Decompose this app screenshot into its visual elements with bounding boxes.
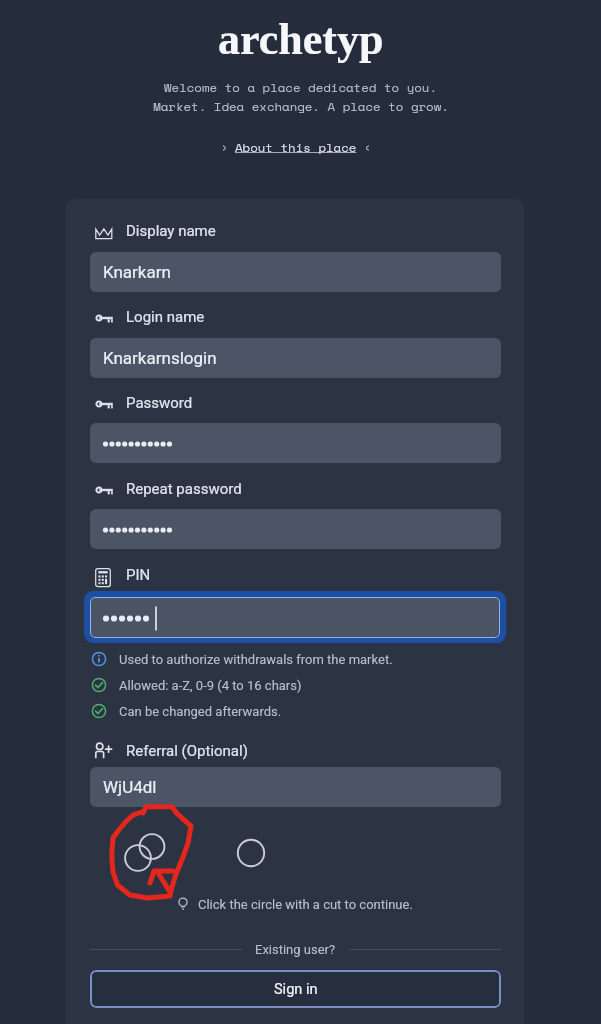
staticText: ‹: [364, 139, 371, 155]
staticText: Password: [126, 394, 193, 412]
staticText: Login name: [126, 308, 205, 326]
staticText: Knarkarn: [103, 262, 171, 282]
staticText: Referral (Optional): [126, 742, 248, 760]
staticText: Market. Idea exchange. A place to grow.: [153, 97, 449, 115]
staticText: Used to authorize withdrawals from the m…: [119, 652, 393, 667]
button[interactable]: Knarkarn: [90, 252, 501, 292]
staticText: archetyp: [218, 15, 384, 64]
staticText: Allowed: a-Z, 0-9 (4 to 16 chars): [119, 678, 302, 693]
button[interactable]: WjU4dl: [90, 767, 501, 807]
staticText: ›: [221, 139, 228, 155]
button[interactable]: [90, 509, 501, 549]
button[interactable]: Sign in: [90, 970, 501, 1008]
staticText: Sign in: [274, 981, 318, 998]
button[interactable]: Plain circle: [236, 848, 266, 878]
button[interactable]: Knarkarnslogin: [90, 338, 501, 378]
button[interactable]: Circle with a cut: [118, 835, 162, 879]
staticText: Welcome to a place dedicated to you.: [164, 78, 437, 96]
staticText: About this place: [235, 138, 357, 156]
button[interactable]: [90, 423, 501, 463]
button[interactable]: ›: [215, 135, 377, 159]
staticText: Display name: [126, 222, 216, 240]
staticText: WjU4dl: [103, 777, 157, 797]
button[interactable]: [84, 591, 506, 643]
staticText: Existing user?: [255, 942, 336, 957]
staticText: Click the circle with a cut to continue.: [198, 897, 413, 912]
staticText: Knarkarnslogin: [103, 348, 217, 368]
staticText: PIN: [126, 566, 151, 584]
staticText: Can be changed afterwards.: [119, 704, 282, 719]
staticText: Repeat password: [126, 480, 242, 498]
